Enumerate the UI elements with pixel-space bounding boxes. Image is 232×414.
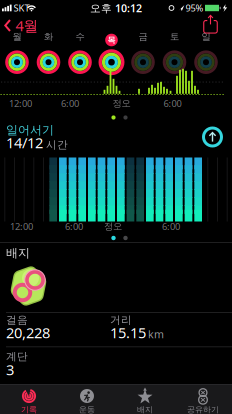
staticText: 6:00 — [162, 220, 180, 233]
button[interactable]: 4월 — [3, 17, 39, 33]
staticText: 배지 — [6, 246, 30, 260]
staticText: 일어서기 — [6, 123, 54, 137]
staticText: 공유하기 — [187, 405, 219, 414]
staticText: 15.15 — [110, 323, 146, 342]
staticText: 6:00 — [65, 220, 83, 233]
staticText: 3 — [6, 360, 14, 379]
staticText: 6:00 — [163, 97, 181, 110]
staticText: km — [148, 327, 164, 341]
staticText: 시간 — [46, 138, 68, 151]
button[interactable]: 목 — [96, 30, 127, 76]
button[interactable] — [200, 125, 224, 149]
button[interactable]: 공유하기 — [174, 385, 232, 414]
button[interactable]: 수 — [64, 30, 96, 76]
staticText: 배지 — [137, 405, 153, 414]
staticText: 목 — [107, 35, 115, 45]
staticText: 운동 — [79, 405, 95, 414]
staticText: 걸음 — [6, 313, 28, 326]
staticText: 일 — [201, 31, 210, 42]
staticText: 14/12 — [6, 133, 43, 152]
button[interactable]: 토 — [159, 30, 190, 76]
button[interactable]: 일 — [190, 30, 222, 76]
staticText: 토 — [170, 31, 179, 42]
staticText: 월 — [12, 31, 21, 42]
staticText: 계단 — [6, 350, 28, 363]
staticText: 6:00 — [61, 97, 79, 110]
staticText: 정오 — [104, 221, 122, 232]
staticText: 화 — [44, 31, 53, 42]
staticText: 수 — [75, 31, 84, 42]
button[interactable]: 배지 — [116, 385, 174, 414]
button[interactable]: 금 — [127, 30, 159, 76]
staticText: 거리 — [110, 313, 132, 326]
staticText: 12:00 — [10, 220, 33, 233]
staticText: 4월 — [15, 16, 38, 35]
staticText: 정오 — [112, 98, 130, 109]
staticText: 오후 10:12 — [90, 1, 142, 15]
button[interactable]: 운동 — [58, 385, 116, 414]
staticText: SKT — [13, 2, 29, 14]
button[interactable] — [201, 14, 219, 35]
button[interactable]: 기록 — [0, 385, 58, 414]
staticText: 95% — [185, 2, 203, 14]
button[interactable]: 월 — [1, 30, 33, 76]
staticText: 금 — [138, 31, 147, 42]
button[interactable]: 화 — [33, 30, 64, 76]
staticText: 기록 — [21, 405, 37, 414]
button[interactable] — [6, 264, 50, 308]
staticText: 12:00 — [9, 97, 32, 110]
staticText: 20,228 — [6, 323, 50, 342]
